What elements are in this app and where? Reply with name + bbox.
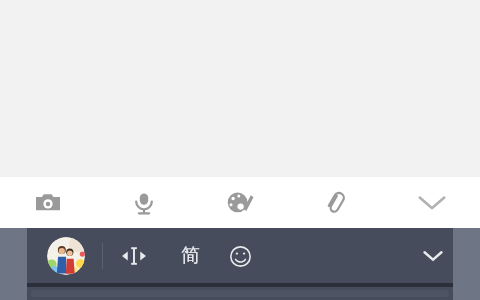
button[interactable]: Voice message bbox=[96, 177, 192, 228]
button[interactable]: Attach file bbox=[288, 177, 384, 228]
button[interactable]: Collapse bbox=[384, 177, 480, 228]
staticText: 简 bbox=[181, 244, 200, 268]
button[interactable]: Hide keyboard bbox=[413, 236, 453, 276]
button[interactable]: 简 bbox=[173, 239, 207, 273]
button[interactable]: Emoji bbox=[223, 239, 257, 273]
button[interactable]: Move cursor bbox=[117, 239, 151, 273]
button[interactable]: Camera bbox=[0, 177, 96, 228]
button[interactable]: Doodle bbox=[192, 177, 288, 228]
button[interactable]: Profile sticker bbox=[47, 237, 85, 275]
